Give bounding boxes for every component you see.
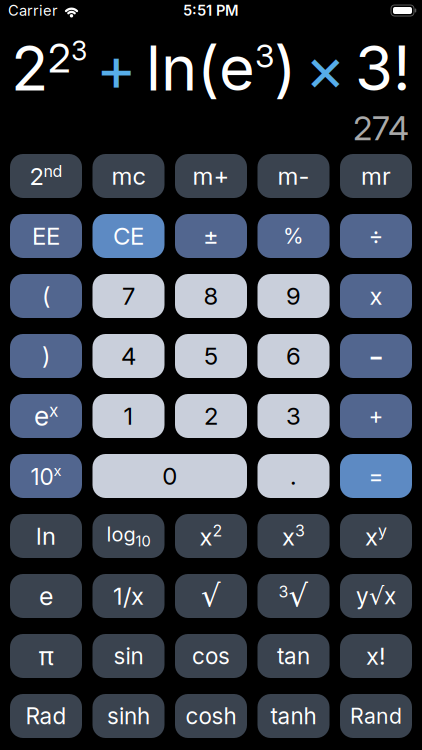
staticText: + [96,32,137,104]
staticText: e [39,581,53,611]
button[interactable]: tan [257,634,329,678]
button[interactable]: % [257,214,329,258]
button[interactable]: . [257,454,329,498]
button[interactable]: 1 [92,394,164,438]
button[interactable]: 3 [257,394,329,438]
button[interactable]: 7 [92,274,164,318]
button[interactable]: cosh [175,694,247,738]
staticText: y√x [356,582,396,610]
staticText: ln [36,522,56,550]
staticText: ± [203,222,219,250]
button[interactable]: 9 [257,274,329,318]
staticText: × [305,32,346,104]
button[interactable]: xy [340,514,412,558]
button[interactable]: y√x [340,574,412,618]
staticText: log10 [106,522,150,550]
staticText: m- [277,162,309,190]
button[interactable]: x [340,274,412,318]
button[interactable]: 0 [92,454,247,498]
staticText: 0 [162,462,177,490]
button[interactable]: x2 [175,514,247,558]
button[interactable]: x3 [257,514,329,558]
staticText: ex [34,400,58,432]
button[interactable]: mr [340,154,412,198]
staticText: xy [365,521,387,551]
button[interactable]: 6 [257,334,329,378]
staticText: CE [113,222,144,250]
button[interactable]: ln [10,514,82,558]
staticText: ) [42,342,50,370]
button[interactable]: m+ [175,154,247,198]
staticText: sin [113,643,143,669]
button[interactable]: π [10,634,82,678]
button[interactable]: 10x [10,454,82,498]
staticText: 6 [286,342,301,370]
button[interactable]: 2nd [10,154,82,198]
staticText: sinh [107,703,150,729]
staticText: mr [361,162,391,190]
staticText: 2nd [29,162,62,190]
staticText: ÷ [368,223,383,249]
staticText: Rand [350,703,402,729]
button[interactable]: = [340,454,412,498]
staticText: 1/x [113,582,144,610]
button[interactable]: sinh [92,694,164,738]
staticText: Rad [25,703,66,729]
button[interactable]: EE [10,214,82,258]
staticText: 274 [353,108,409,148]
button[interactable]: tanh [257,694,329,738]
button[interactable]: 3√ [257,574,329,618]
button[interactable]: √ [175,574,247,618]
button[interactable]: 4 [92,334,164,378]
staticText: 3 [286,402,301,430]
button[interactable]: Rad [10,694,82,738]
staticText: ( [42,282,50,310]
staticText: cosh [185,703,236,729]
staticText: 4 [121,342,136,370]
staticText: π [38,641,53,671]
button[interactable]: 5 [175,334,247,378]
button[interactable]: x! [340,634,412,678]
button[interactable]: cos [175,634,247,678]
staticText: 5 [204,342,218,370]
staticText: 7 [122,282,135,310]
staticText: x! [366,642,386,670]
staticText: 5:51 PM [183,2,239,19]
staticText: 223 [11,32,87,104]
staticText: + [368,403,383,429]
staticText: = [368,463,383,489]
button[interactable]: ÷ [340,214,412,258]
button[interactable]: Rand [340,694,412,738]
staticText: mc [111,162,145,190]
button[interactable]: sin [92,634,164,678]
staticText: 2 [204,402,218,430]
staticText: . [290,462,297,490]
staticText: x3 [282,521,305,551]
button[interactable]: ± [175,214,247,258]
button[interactable]: log10 [92,514,164,558]
button[interactable]: 1/x [92,574,164,618]
staticText: tan [277,643,310,669]
staticText: 9 [286,282,301,310]
staticText: tanh [270,703,316,729]
staticText: x [369,282,382,310]
button[interactable]: 2 [175,394,247,438]
button[interactable]: ex [10,394,82,438]
button[interactable]: ( [10,274,82,318]
button[interactable]: 8 [175,274,247,318]
button[interactable]: + [340,394,412,438]
button[interactable]: m- [257,154,329,198]
button[interactable]: - [340,334,412,378]
staticText: x2 [199,521,222,551]
staticText: cos [192,643,230,669]
button[interactable]: e [10,574,82,618]
button[interactable]: mc [92,154,164,198]
staticText: 3! [355,32,411,104]
staticText: - [368,336,383,376]
staticText: 3√ [278,579,308,613]
staticText: m+ [192,162,229,190]
button[interactable]: ) [10,334,82,378]
staticText: √ [201,578,221,614]
button[interactable]: CE [92,214,164,258]
staticText: EE [32,222,60,250]
